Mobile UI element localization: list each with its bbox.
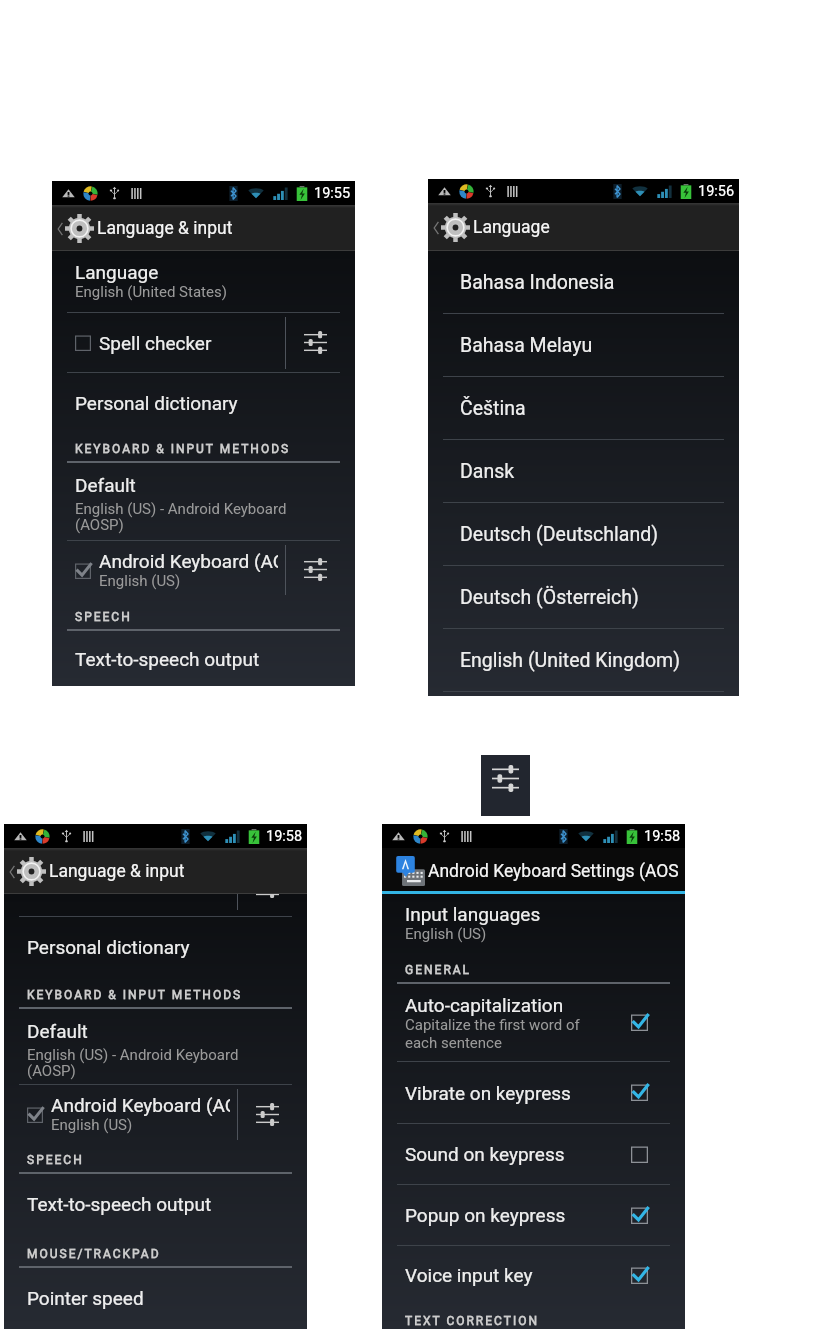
staticText: GENERAL — [405, 963, 472, 977]
button[interactable]: Default — [4, 1009, 307, 1084]
staticText: English (US) — [99, 572, 181, 590]
staticText: Language & input — [49, 861, 185, 882]
button[interactable]: Bahasa Melayu — [428, 314, 739, 376]
button[interactable]: Text-to-speech output — [4, 1174, 307, 1234]
button[interactable]: Android Keyboard (AO — [52, 541, 285, 598]
staticText: Čeština — [460, 397, 526, 420]
staticText: Input languages — [405, 903, 541, 925]
staticText: Dansk — [460, 460, 515, 483]
button[interactable]: Input languages — [382, 894, 685, 950]
staticText: Pointer speed — [27, 1287, 144, 1309]
button[interactable]: Čeština — [428, 377, 739, 439]
button[interactable]: Android Keyboard Settings (AOS — [382, 848, 685, 894]
button[interactable]: Personal dictionary — [4, 917, 307, 977]
staticText: Android Keyboard (AO — [99, 550, 278, 572]
staticText: English (United Kingdom) — [460, 649, 681, 672]
button[interactable]: Language — [52, 251, 355, 312]
staticText: Default — [75, 474, 136, 496]
button[interactable]: Pointer speed — [4, 1268, 307, 1328]
staticText: TEXT CORRECTION — [405, 1314, 539, 1328]
staticText: Voice input key — [405, 1264, 533, 1286]
staticText: Deutsch (Deutschland) — [460, 523, 658, 546]
staticText: 19:58 — [644, 828, 681, 845]
staticText: Text-to-speech output — [27, 1193, 212, 1215]
staticText: English (US) - Android Keyboard (AOSP) — [27, 1046, 239, 1080]
staticText: Vibrate on keypress — [405, 1082, 571, 1104]
button[interactable]: English (United Kingdom) — [428, 629, 739, 691]
staticText: Language & input — [97, 218, 233, 239]
button[interactable]: Deutsch (Österreich) — [428, 566, 739, 628]
staticText: Auto-capitalization — [405, 994, 564, 1016]
staticText: English (US) — [405, 925, 487, 943]
button[interactable]: Text-to-speech output — [52, 631, 355, 686]
staticText: Text-to-speech output — [75, 648, 260, 670]
button[interactable]: Dansk — [428, 440, 739, 502]
staticText: KEYBOARD & INPUT METHODS — [27, 988, 243, 1002]
staticText: Default — [27, 1020, 88, 1042]
button[interactable]: Auto-capitalization — [382, 984, 685, 1061]
button[interactable]: Deutsch (Deutschland) — [428, 503, 739, 565]
button[interactable]: Personal dictionary — [52, 373, 355, 432]
staticText: MOUSE/TRACKPAD — [27, 1247, 161, 1261]
button[interactable]: Language — [428, 203, 739, 251]
staticText: Language — [473, 217, 550, 238]
button[interactable]: Input method settings — [481, 755, 530, 816]
button[interactable]: Default — [52, 463, 355, 540]
staticText: Bahasa Indonesia — [460, 271, 615, 294]
staticText: English (United States) — [75, 283, 227, 301]
button[interactable]: Language & input — [4, 848, 307, 894]
staticText: KEYBOARD & INPUT METHODS — [75, 442, 291, 456]
staticText: SPEECH — [27, 1153, 84, 1167]
staticText: Spell checker — [99, 332, 212, 354]
button[interactable]: Spell checker — [52, 313, 285, 372]
staticText: English (US) - Android Keyboard (AOSP) — [75, 500, 287, 534]
button[interactable]: Language & input — [52, 205, 355, 251]
button[interactable]: Android Keyboard (AO — [4, 1085, 237, 1143]
staticText: Personal dictionary — [27, 936, 190, 958]
button[interactable]: Input method settings — [286, 313, 355, 372]
staticText: 19:55 — [314, 185, 351, 202]
staticText: 19:56 — [698, 183, 735, 200]
staticText: Bahasa Melayu — [460, 334, 593, 357]
staticText: Deutsch (Österreich) — [460, 586, 639, 609]
staticText: Language — [75, 261, 159, 283]
staticText: Android Keyboard (AO — [51, 1094, 230, 1116]
staticText: Personal dictionary — [75, 392, 238, 414]
button[interactable]: Input method settings — [238, 1085, 307, 1143]
staticText: Android Keyboard Settings (AOS — [428, 861, 679, 882]
button[interactable]: Input method settings — [286, 541, 355, 598]
staticText: 19:58 — [266, 828, 303, 845]
staticText: Sound on keypress — [405, 1143, 565, 1165]
button[interactable]: Voice input key — [382, 1246, 685, 1304]
staticText: English (US) — [51, 1116, 133, 1134]
button[interactable]: Popup on keypress — [382, 1185, 685, 1245]
button[interactable]: Vibrate on keypress — [382, 1062, 685, 1123]
staticText: SPEECH — [75, 610, 132, 624]
staticText: Popup on keypress — [405, 1204, 566, 1226]
button[interactable]: Bahasa Indonesia — [428, 251, 739, 313]
button[interactable]: Sound on keypress — [382, 1124, 685, 1184]
staticText: Capitalize the first word of each senten… — [405, 1016, 580, 1052]
